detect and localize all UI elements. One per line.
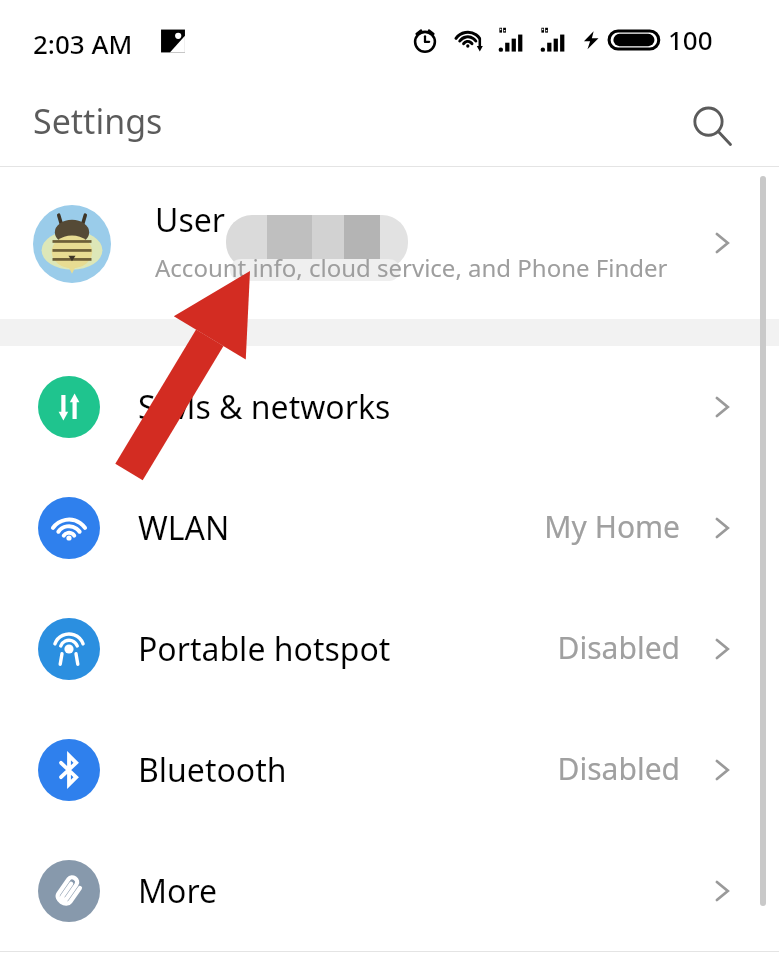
button[interactable]: Bluetooth <box>0 709 779 830</box>
staticText: Bluetooth <box>138 748 287 792</box>
button[interactable]: Search <box>680 94 744 158</box>
staticText: Settings <box>33 98 163 144</box>
staticText: 100 <box>668 22 713 57</box>
button[interactable]: Portable hotspot <box>0 588 779 709</box>
button[interactable]: SIMs & networks <box>0 346 779 467</box>
staticText: My Home <box>400 506 680 547</box>
staticText: Disabled <box>400 627 680 668</box>
button[interactable]: WLAN <box>0 467 779 588</box>
staticText: More <box>138 869 218 913</box>
staticText: SIMs & networks <box>138 385 391 429</box>
staticText: Account info, cloud service, and Phone F… <box>155 251 668 284</box>
button[interactable]: More <box>0 830 779 951</box>
staticText: Disabled <box>400 748 680 789</box>
staticText: Portable hotspot <box>138 627 391 671</box>
button[interactable]: User <box>0 167 779 319</box>
staticText: 2:03 AM <box>33 26 133 61</box>
staticText: User <box>155 198 225 242</box>
staticText: WLAN <box>138 506 230 550</box>
